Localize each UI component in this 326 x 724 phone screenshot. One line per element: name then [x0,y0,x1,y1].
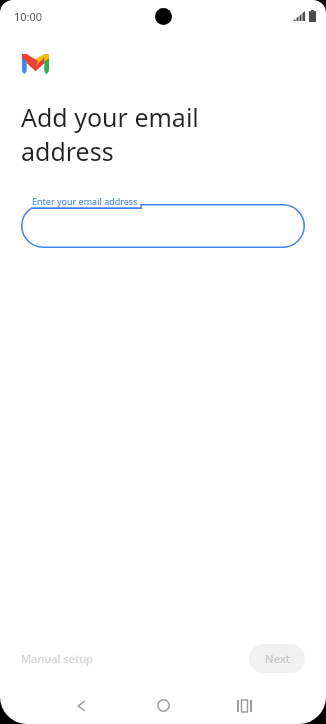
button[interactable]: Recent apps [223,687,265,724]
button[interactable]: Back [61,687,103,724]
staticText: Enter your email address [32,195,138,207]
button[interactable]: Manual setup [14,645,100,672]
staticText: Next [265,651,290,666]
button[interactable]: Next [249,644,305,673]
staticText: Manual setup [21,651,93,666]
button[interactable]: Home [142,687,184,724]
staticText: address [21,134,114,168]
staticText: Add your email [21,100,199,134]
staticText: 10:00 [14,9,43,24]
button[interactable]: Enter your email address [21,194,305,248]
